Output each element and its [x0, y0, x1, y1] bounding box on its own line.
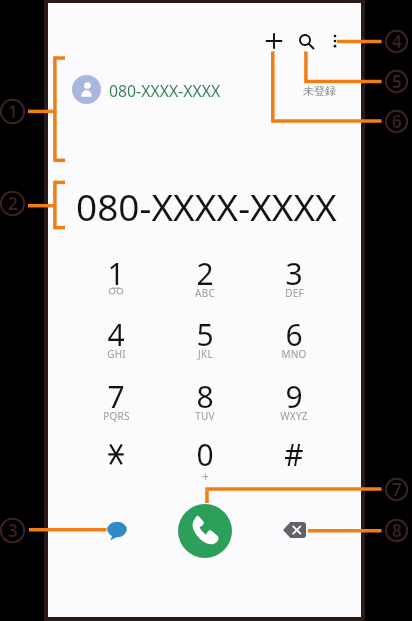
- staticText: JKL: [198, 347, 213, 361]
- staticText: #: [284, 434, 304, 475]
- staticText: 7: [392, 478, 402, 501]
- button[interactable]: 8: [168, 372, 242, 428]
- staticText: 5: [392, 70, 402, 93]
- button[interactable]: 3: [257, 249, 331, 305]
- staticText: 6: [285, 314, 303, 355]
- button[interactable]: Search: [282, 17, 328, 63]
- staticText: 080-XXXX-XXXX: [76, 181, 337, 231]
- staticText: 3: [8, 519, 18, 542]
- staticText: 3: [285, 253, 303, 294]
- staticText: MNO: [281, 347, 307, 361]
- button[interactable]: 1: [79, 249, 153, 305]
- button[interactable]: 7: [79, 372, 153, 428]
- button[interactable]: 0: [168, 430, 242, 486]
- staticText: 2: [8, 192, 18, 215]
- staticText: 2: [196, 253, 214, 294]
- staticText: 8: [196, 376, 214, 417]
- button[interactable]: [79, 430, 153, 486]
- staticText: 4: [392, 30, 402, 53]
- button[interactable]: Call: [178, 504, 232, 558]
- staticText: 8: [392, 519, 402, 542]
- button[interactable]: Add contact: [251, 18, 297, 64]
- button[interactable]: 2: [168, 249, 242, 305]
- button[interactable]: More options: [315, 21, 355, 61]
- staticText: 080-XXXX-XXXX: [109, 80, 221, 102]
- staticText: 1: [8, 100, 18, 123]
- staticText: 1: [107, 253, 125, 294]
- staticText: 6: [392, 110, 402, 133]
- staticText: PQRS: [103, 409, 130, 423]
- button[interactable]: 5: [168, 310, 242, 366]
- staticText: 未登録: [303, 84, 336, 98]
- staticText: 7: [107, 376, 125, 417]
- staticText: ABC: [195, 286, 215, 300]
- staticText: TUV: [195, 409, 215, 423]
- button[interactable]: Backspace: [275, 511, 313, 549]
- staticText: +: [202, 468, 209, 484]
- staticText: 4: [107, 314, 125, 355]
- staticText: DEF: [285, 286, 304, 300]
- button[interactable]: 4: [79, 310, 153, 366]
- staticText: 0: [196, 434, 214, 475]
- button[interactable]: 9: [257, 372, 331, 428]
- staticText: 9: [285, 376, 303, 417]
- button[interactable]: 080-XXXX-XXXX: [66, 72, 379, 113]
- button[interactable]: 6: [257, 310, 331, 366]
- button[interactable]: Messages: [98, 512, 136, 550]
- staticText: GHI: [107, 347, 126, 361]
- staticText: 5: [196, 314, 214, 355]
- staticText: WXYZ: [280, 409, 308, 423]
- button[interactable]: #: [257, 430, 331, 486]
